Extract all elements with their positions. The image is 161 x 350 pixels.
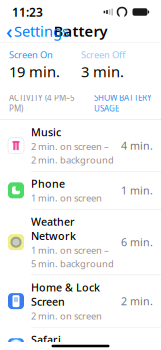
button[interactable]: Phone [0,172,161,210]
staticText: Music [31,125,61,139]
staticText: Settings [14,21,69,41]
staticText: 19 min. [9,62,60,81]
staticText: 1 min. [121,183,153,197]
staticText: 11:23 [12,4,43,20]
staticText: 1 min. on screen [31,192,102,204]
button[interactable]: SHOW BATTERY USAGE [94,90,152,116]
staticText: Safari [31,332,61,347]
staticText: 4 min. [121,138,153,153]
button[interactable]: Home & Lock Screen [0,275,161,327]
staticText: Phone [31,177,65,191]
staticText: 3 min. [81,62,124,81]
staticText: ‹ [6,18,13,44]
staticText: Home & Lock Screen [31,280,100,309]
staticText: Weather Network [31,215,76,243]
staticText: 6 min. [121,235,153,249]
staticText: 2 min. background [31,154,114,166]
button[interactable]: Weather Network [0,210,161,275]
staticText: Screen On [9,48,53,61]
staticText: 2 min. [121,294,153,308]
staticText: Battery [53,21,107,41]
staticText: 2 min. on screen [31,310,102,322]
staticText: SHOW BATTERY USAGE [94,92,152,114]
staticText: Screen Off [81,48,125,61]
staticText: 5 min. background [31,257,114,270]
staticText: 1 min. on screen – [31,244,109,256]
staticText: 2 min. on screen – [31,140,109,153]
button[interactable]: Safari [0,327,161,350]
staticText: ACTIVITY (4 PM–5 PM) [9,92,75,114]
button[interactable]: ‹ [0,15,69,47]
button[interactable]: Music [0,120,161,172]
